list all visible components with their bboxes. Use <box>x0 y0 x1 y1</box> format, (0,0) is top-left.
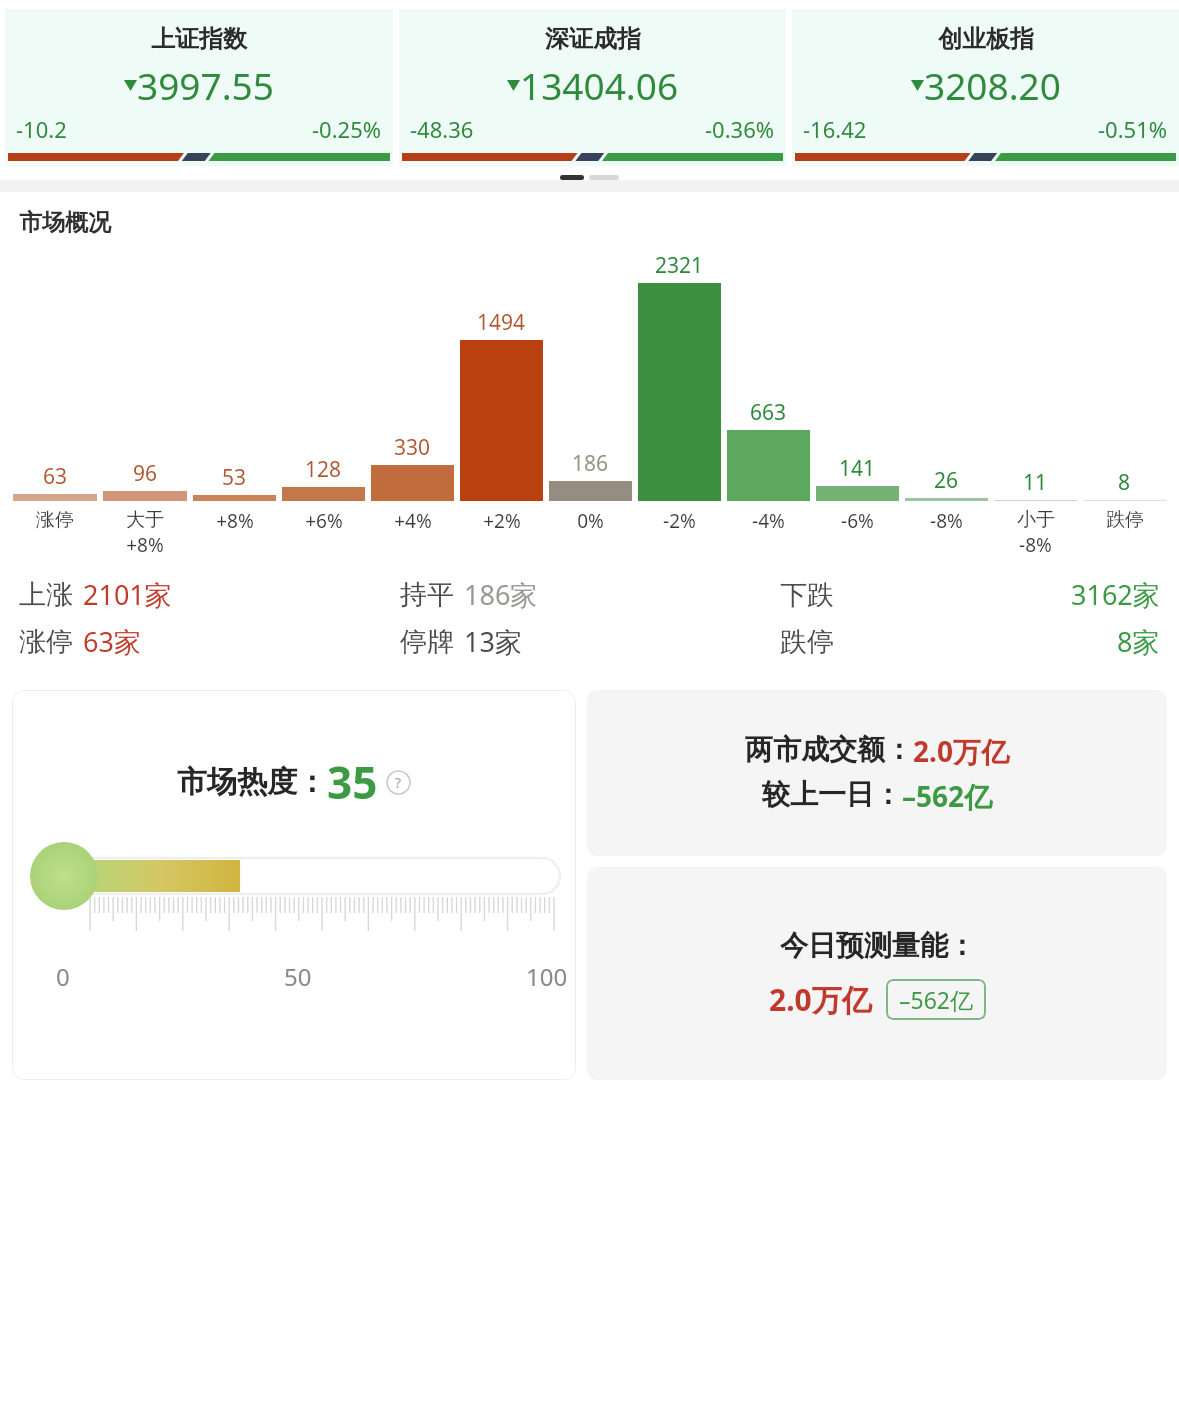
staticText: 63 <box>43 462 68 491</box>
staticText: 2321 <box>655 251 704 280</box>
staticText: –562亿 <box>902 777 993 815</box>
staticText: 创业板指 <box>938 24 1034 54</box>
button[interactable]: 今日预测量能： <box>587 867 1167 1080</box>
staticText: 3997.55 <box>137 60 274 110</box>
staticText: -16.42 <box>803 114 867 144</box>
staticText: 持平 <box>400 578 454 612</box>
staticText: 186家 <box>464 576 538 613</box>
staticText: -4% <box>752 508 785 534</box>
staticText: +6% <box>305 508 343 534</box>
staticText: -6% <box>841 508 874 534</box>
staticText: 跌停 <box>1106 508 1144 532</box>
staticText: 3162家 <box>1071 576 1160 613</box>
staticText: -8% <box>1019 532 1052 558</box>
button[interactable]: 创业板指 <box>792 9 1179 166</box>
staticText: 市场概况 <box>19 208 111 237</box>
staticText: 8 <box>1118 468 1131 497</box>
staticText: 100 <box>526 960 568 993</box>
staticText: –562亿 <box>899 984 973 1015</box>
staticText: +4% <box>394 508 432 534</box>
button[interactable]: 市场热度： <box>12 690 576 1080</box>
staticText: 较上一日： <box>762 777 902 812</box>
button[interactable]: 上证指数 <box>5 9 393 166</box>
staticText: 市场热度： <box>177 763 327 801</box>
staticText: 13404.06 <box>520 60 679 110</box>
staticText: -48.36 <box>410 114 474 144</box>
staticText: 两市成交额： <box>745 732 913 767</box>
staticText: 3208.20 <box>924 60 1061 110</box>
staticText: 13家 <box>464 623 522 660</box>
staticText: 35 <box>327 752 378 812</box>
staticText: -0.25% <box>312 114 382 144</box>
staticText: 96 <box>133 459 158 488</box>
staticText: 停牌 <box>400 625 454 659</box>
staticText: 141 <box>839 454 876 483</box>
staticText: 2.0万亿 <box>913 732 1009 770</box>
staticText: 186 <box>572 449 609 478</box>
button[interactable]: 两市成交额： <box>587 690 1167 856</box>
staticText: -10.2 <box>16 114 67 144</box>
staticText: -2% <box>663 508 696 534</box>
staticText: 涨停 <box>19 625 73 659</box>
staticText: 26 <box>934 466 959 495</box>
staticText: 上证指数 <box>151 24 247 54</box>
button[interactable]: 深证成指 <box>399 9 786 166</box>
staticText: 0% <box>577 508 604 534</box>
staticText: -0.36% <box>705 114 775 144</box>
staticText: 8家 <box>1117 623 1160 660</box>
staticText: 128 <box>305 455 342 484</box>
staticText: 下跌 <box>780 578 834 612</box>
button[interactable]: 帮助 <box>386 770 411 795</box>
staticText: ? <box>395 773 402 792</box>
staticText: 50 <box>284 960 312 993</box>
staticText: 2.0万亿 <box>769 979 872 1020</box>
staticText: -0.51% <box>1098 114 1168 144</box>
staticText: 大于 <box>126 508 164 532</box>
staticText: +2% <box>483 508 521 534</box>
staticText: 涨停 <box>36 508 74 532</box>
staticText: 跌停 <box>780 625 834 659</box>
staticText: -8% <box>930 508 963 534</box>
staticText: 53 <box>222 463 247 492</box>
staticText: 今日预测量能： <box>780 928 976 963</box>
staticText: +8% <box>216 508 254 534</box>
staticText: 663 <box>750 398 787 427</box>
staticText: 小于 <box>1017 508 1055 532</box>
staticText: 63家 <box>83 623 141 660</box>
staticText: 330 <box>394 433 431 462</box>
staticText: 2101家 <box>83 576 172 613</box>
staticText: 11 <box>1023 468 1048 497</box>
staticText: +8% <box>126 532 164 558</box>
staticText: 上涨 <box>19 578 73 612</box>
staticText: 深证成指 <box>545 24 641 54</box>
staticText: 0 <box>56 960 70 993</box>
staticText: 1494 <box>477 308 526 337</box>
